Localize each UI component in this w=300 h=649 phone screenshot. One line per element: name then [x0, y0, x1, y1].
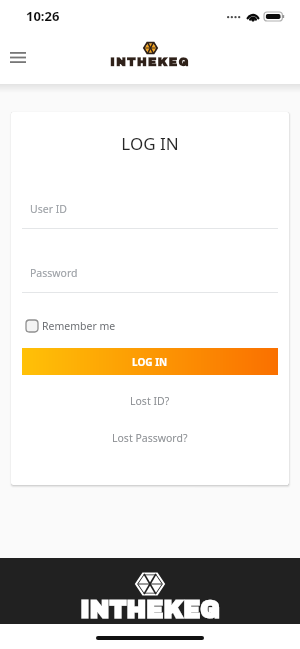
staticText: Password — [30, 266, 78, 280]
staticText: 10:26 — [26, 7, 60, 25]
button[interactable]: Remember me — [26, 319, 116, 333]
button[interactable]: Lost ID? — [11, 394, 289, 408]
button[interactable]: INTHEKEG home — [110, 41, 190, 69]
button[interactable]: LOG IN — [22, 348, 278, 375]
staticText: Lost Password? — [112, 431, 188, 445]
staticText: Lost ID? — [130, 394, 170, 408]
button[interactable]: Open navigation menu — [0, 39, 36, 75]
button[interactable]: Lost Password? — [11, 431, 289, 445]
staticText: INTHEKEG — [80, 598, 220, 623]
staticText: INTHEKEG — [110, 56, 190, 69]
staticText: User ID — [30, 202, 67, 216]
staticText: LOG IN — [11, 132, 289, 155]
staticText: LOG IN — [132, 355, 168, 369]
staticText: Remember me — [42, 319, 116, 333]
